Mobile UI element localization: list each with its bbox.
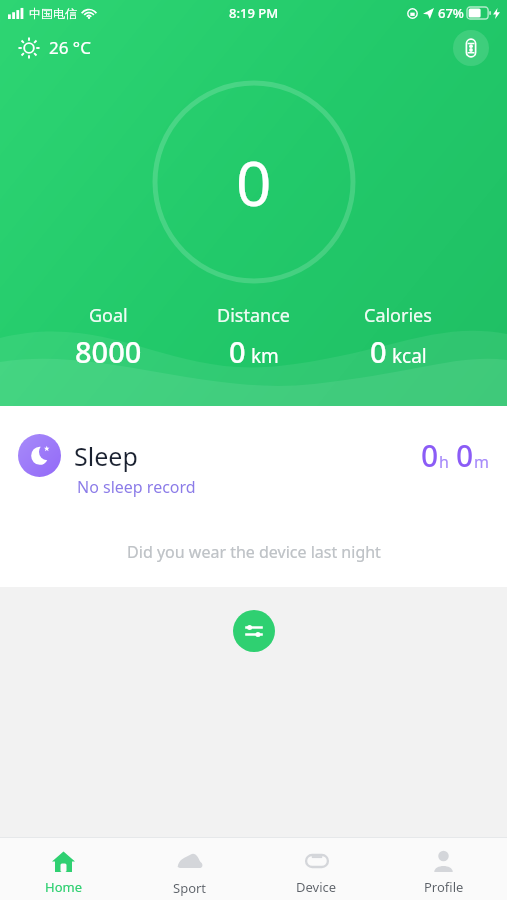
staticText: 0 bbox=[229, 332, 246, 371]
staticText: Sleep bbox=[74, 439, 138, 473]
button[interactable]: Sleep bbox=[0, 406, 507, 587]
staticText: 0 bbox=[421, 435, 439, 476]
staticText: 中国电信 bbox=[29, 6, 77, 21]
staticText: m bbox=[474, 451, 489, 473]
button[interactable]: Device bbox=[253, 842, 380, 896]
staticText: Calories bbox=[364, 303, 432, 328]
staticText: No sleep record bbox=[77, 476, 196, 498]
staticText: Did you wear the device last night bbox=[127, 541, 381, 563]
staticText: Distance bbox=[217, 303, 290, 328]
staticText: 26 °C bbox=[49, 36, 91, 59]
staticText: 0 bbox=[370, 332, 387, 371]
staticText: Goal bbox=[89, 303, 128, 328]
button[interactable]: Home bbox=[0, 843, 126, 896]
button[interactable]: Profile bbox=[380, 843, 507, 896]
staticText: Sport bbox=[173, 879, 207, 897]
button[interactable]: Adjust cards bbox=[233, 610, 275, 652]
staticText: 0 bbox=[456, 435, 474, 476]
staticText: 8:19 PM bbox=[229, 4, 279, 22]
staticText: h bbox=[439, 451, 449, 473]
staticText: Home bbox=[45, 878, 82, 896]
staticText: 8000 bbox=[75, 332, 142, 371]
staticText: Device bbox=[296, 878, 337, 896]
button[interactable]: Sport bbox=[126, 842, 253, 897]
button[interactable]: Device bbox=[453, 30, 489, 66]
staticText: km bbox=[246, 343, 279, 369]
staticText: kcal bbox=[387, 343, 427, 369]
staticText: 0 bbox=[236, 140, 272, 224]
staticText: 67% bbox=[438, 4, 464, 22]
staticText: Profile bbox=[424, 878, 464, 896]
